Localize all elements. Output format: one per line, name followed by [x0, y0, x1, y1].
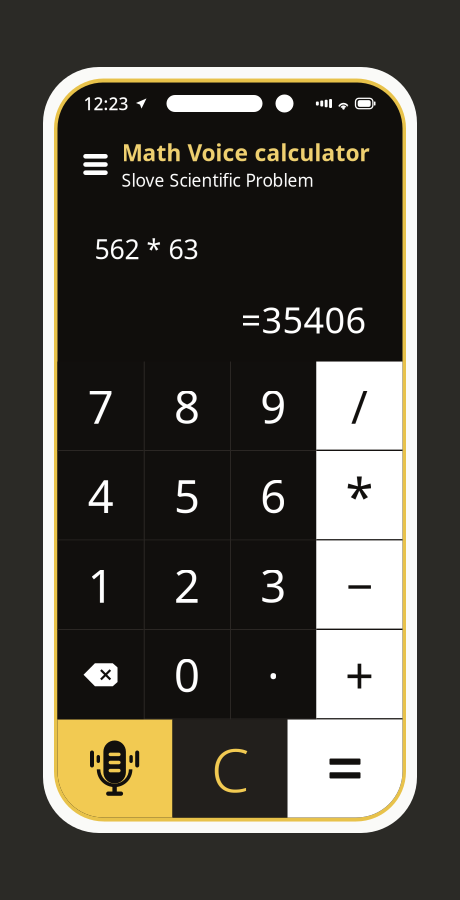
staticText: · [267, 645, 279, 705]
staticText: =35406 [240, 296, 366, 343]
button[interactable]: − [316, 540, 402, 630]
staticText: 6 [260, 466, 286, 526]
button[interactable]: 5 [144, 451, 230, 540]
button[interactable]: + [316, 630, 402, 719]
staticText: + [345, 641, 374, 708]
staticText: 1 [88, 555, 114, 615]
staticText: * [345, 462, 373, 529]
button[interactable]: · [230, 630, 316, 719]
staticText: 4 [88, 466, 114, 526]
button[interactable]: 4 [57, 451, 144, 540]
staticText: / [351, 376, 368, 436]
button[interactable]: 3 [230, 540, 316, 630]
button[interactable]: Menu [81, 149, 109, 179]
staticText: 3 [260, 555, 286, 615]
staticText: 562 * 63 [94, 231, 198, 266]
staticText: C [211, 728, 249, 809]
staticText: 2 [174, 555, 200, 615]
staticText: − [346, 553, 373, 617]
staticText: 7 [88, 376, 114, 436]
button[interactable]: * [316, 451, 402, 540]
button[interactable]: 2 [144, 540, 230, 630]
staticText: Slove Scientific Problem [121, 168, 313, 191]
staticText: 9 [260, 376, 286, 436]
staticText: 0 [174, 645, 200, 705]
button[interactable]: 7 [57, 361, 144, 451]
staticText: 12:23 [83, 92, 128, 115]
button[interactable]: 0 [144, 630, 230, 719]
button[interactable]: C [172, 719, 287, 817]
staticText: 5 [174, 466, 200, 526]
button[interactable]: / [316, 361, 402, 451]
button[interactable]: Backspace [57, 630, 144, 719]
button[interactable]: 6 [230, 451, 316, 540]
staticText: Math Voice calculator [121, 137, 369, 167]
button[interactable]: 9 [230, 361, 316, 451]
button[interactable]: Voice input [57, 719, 172, 817]
button[interactable]: Equals [287, 719, 402, 817]
button[interactable]: 8 [144, 361, 230, 451]
staticText: 8 [174, 376, 200, 436]
button[interactable]: 1 [57, 540, 144, 630]
